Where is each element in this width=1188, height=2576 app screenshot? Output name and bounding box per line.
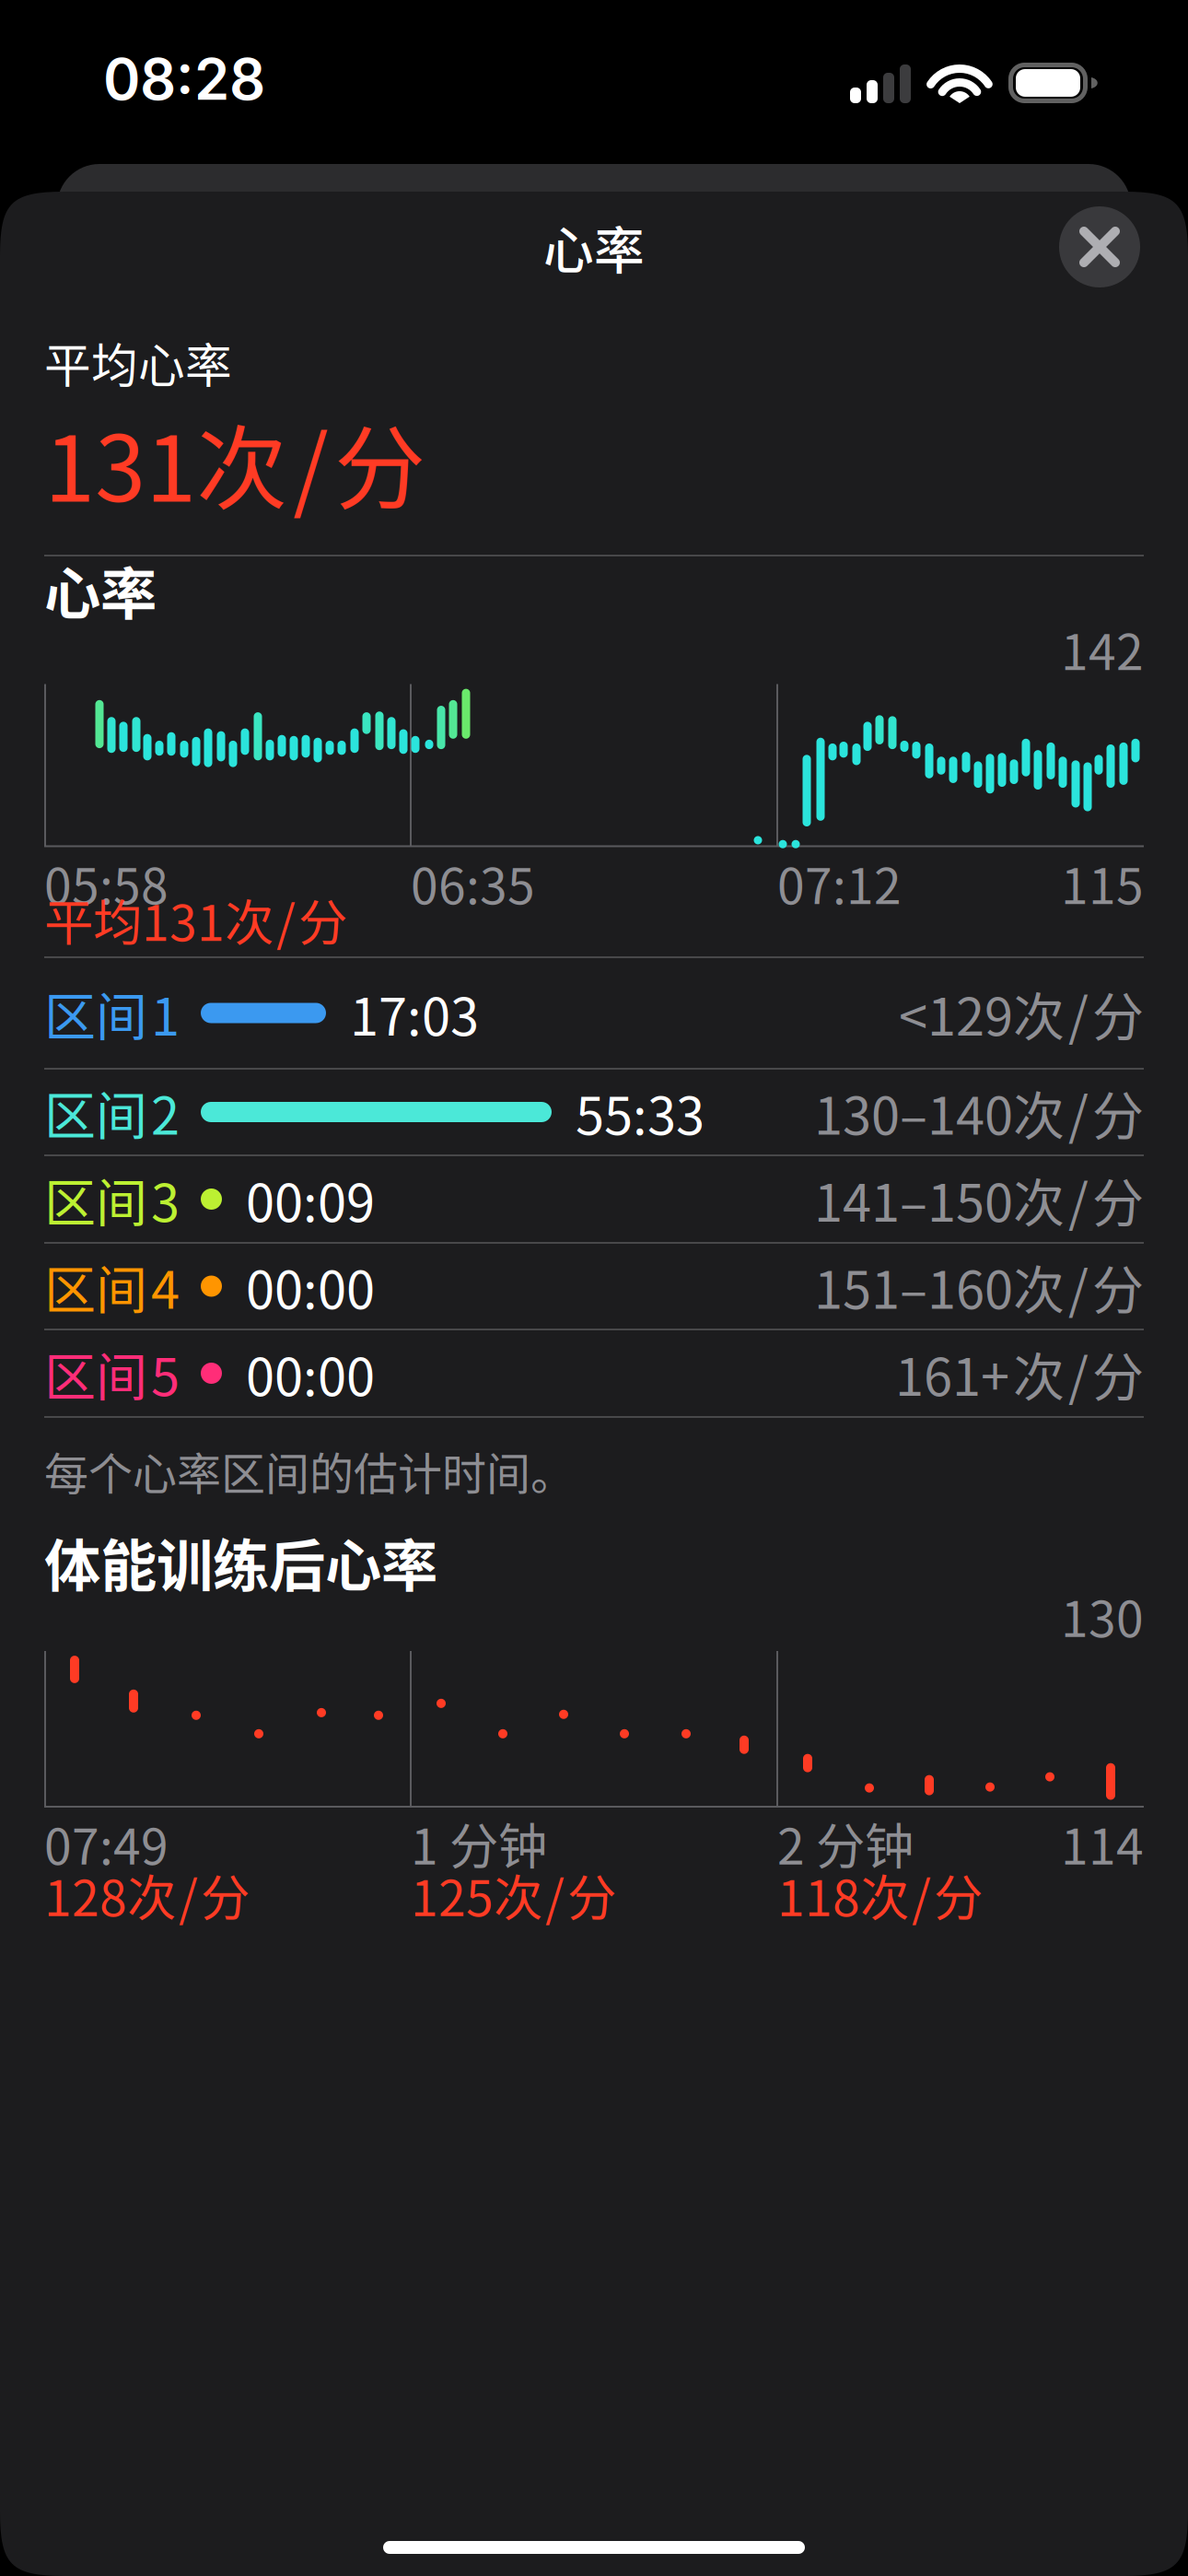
staticText: 平均131次 / 分	[44, 884, 347, 955]
staticText: 心率	[543, 210, 645, 283]
staticText: 07:12	[777, 847, 902, 918]
staticText: 区间 2	[44, 1075, 180, 1149]
staticText: 08:28	[103, 45, 265, 113]
button[interactable]: 区间 2	[0, 1070, 1188, 1154]
staticText: 128次 / 分	[44, 1859, 250, 1930]
staticText: 1 分钟	[411, 1808, 547, 1879]
button[interactable]: 区间 1	[0, 958, 1188, 1068]
staticText: 平均心率	[44, 329, 232, 396]
staticText: 区间 3	[44, 1162, 180, 1236]
staticText: 每个心率区间的估计时间。	[44, 1439, 575, 1503]
staticText: 心率	[44, 549, 157, 631]
staticText: 131次 / 分	[44, 396, 425, 528]
staticText: 00:00	[246, 1336, 375, 1411]
button[interactable]: 区间 3	[0, 1156, 1188, 1242]
staticText: 161+ 次 / 分	[895, 1336, 1144, 1411]
staticText: 114	[1061, 1808, 1144, 1879]
staticText: 体能训练后心率	[44, 1521, 437, 1603]
staticText: 130	[1061, 1580, 1144, 1651]
staticText: 55:33	[576, 1075, 705, 1149]
staticText: 区间 1	[44, 976, 180, 1050]
staticText: 00:00	[246, 1249, 375, 1324]
button[interactable]: 区间 5	[0, 1330, 1188, 1416]
button[interactable]: 关闭	[1059, 206, 1140, 287]
staticText: <129次 / 分	[899, 976, 1144, 1050]
staticText: 00:09	[246, 1162, 375, 1236]
staticText: 151–160次 / 分	[814, 1249, 1144, 1324]
staticText: 118次 / 分	[777, 1859, 983, 1930]
staticText: 06:35	[411, 847, 535, 918]
staticText: 115	[1061, 847, 1144, 918]
staticText: 130–140次 / 分	[814, 1075, 1144, 1149]
staticText: 141–150次 / 分	[814, 1162, 1144, 1236]
staticText: 07:49	[44, 1808, 169, 1879]
staticText: 05:58	[44, 847, 169, 918]
staticText: 2 分钟	[777, 1808, 914, 1879]
staticText: 17:03	[350, 976, 479, 1050]
staticText: 区间 5	[44, 1336, 180, 1411]
button[interactable]: 区间 4	[0, 1244, 1188, 1329]
staticText: 125次 / 分	[411, 1859, 616, 1930]
staticText: 区间 4	[44, 1249, 180, 1324]
staticText: 142	[1061, 613, 1144, 684]
